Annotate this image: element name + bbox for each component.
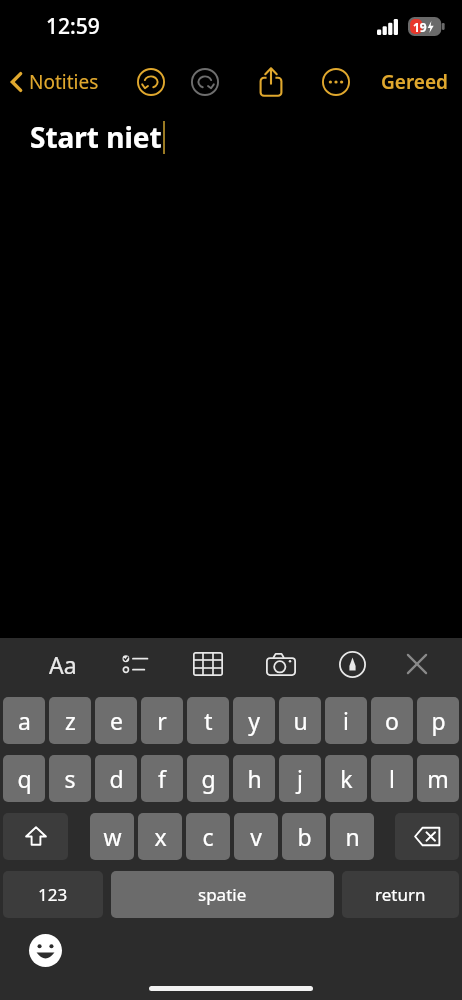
staticText: Aa <box>49 649 77 680</box>
staticText: return <box>375 883 426 906</box>
button[interactable]: Aa <box>40 641 86 687</box>
staticText: spatie <box>198 883 247 906</box>
button[interactable]: t <box>187 697 229 744</box>
button[interactable]: w <box>90 813 134 860</box>
button[interactable]: e <box>95 697 137 744</box>
staticText: c <box>202 821 214 852</box>
button[interactable]: o <box>371 697 413 744</box>
staticText: o <box>385 705 399 736</box>
staticText: d <box>109 763 124 794</box>
button[interactable]: b <box>282 813 326 860</box>
staticText: a <box>18 705 31 736</box>
staticText: h <box>247 763 262 794</box>
staticText: z <box>65 705 76 736</box>
staticText: Notities <box>29 69 99 95</box>
staticText: l <box>389 763 395 794</box>
staticText: Gereed <box>381 69 448 95</box>
button[interactable]: p <box>417 697 459 744</box>
staticText: p <box>431 705 446 736</box>
button[interactable]: return <box>342 871 459 918</box>
staticText: t <box>204 705 213 736</box>
button[interactable]: m <box>417 755 459 802</box>
button[interactable]: Start niet <box>0 108 462 600</box>
button[interactable]: c <box>186 813 230 860</box>
button[interactable]: Emoji <box>22 927 68 973</box>
button[interactable]: Backspace <box>395 813 459 860</box>
button[interactable]: Share <box>249 60 293 104</box>
button[interactable]: r <box>141 697 183 744</box>
button[interactable]: s <box>49 755 91 802</box>
staticText: g <box>201 763 216 794</box>
button[interactable]: More options <box>314 60 358 104</box>
button[interactable]: z <box>49 697 91 744</box>
button[interactable]: j <box>279 755 321 802</box>
button[interactable]: f <box>141 755 183 802</box>
button[interactable]: Redo <box>183 60 227 104</box>
button[interactable]: h <box>233 755 275 802</box>
staticText: u <box>293 705 308 736</box>
staticText: 123 <box>38 883 68 906</box>
button[interactable]: v <box>234 813 278 860</box>
staticText: w <box>103 821 122 852</box>
button[interactable]: g <box>187 755 229 802</box>
button[interactable]: l <box>371 755 413 802</box>
button[interactable]: 123 <box>3 871 103 918</box>
staticText: n <box>345 821 360 852</box>
staticText: i <box>343 705 349 736</box>
button[interactable]: Markup <box>329 641 375 687</box>
button[interactable]: i <box>325 697 367 744</box>
staticText: k <box>340 763 353 794</box>
button[interactable]: Notities <box>0 63 107 101</box>
button[interactable]: u <box>279 697 321 744</box>
button[interactable]: Table <box>185 641 231 687</box>
button[interactable]: y <box>233 697 275 744</box>
button[interactable]: Shift <box>3 813 68 860</box>
button[interactable]: x <box>138 813 182 860</box>
button[interactable]: Undo <box>129 60 173 104</box>
staticText: f <box>158 763 166 794</box>
staticText: b <box>297 821 312 852</box>
button[interactable]: Gereed <box>367 63 462 101</box>
staticText: q <box>17 763 32 794</box>
staticText: r <box>157 705 167 736</box>
button[interactable]: n <box>330 813 374 860</box>
button[interactable]: q <box>3 755 45 802</box>
button[interactable]: a <box>3 697 45 744</box>
button[interactable]: k <box>325 755 367 802</box>
button[interactable]: Checklist <box>112 641 158 687</box>
staticText: 19 <box>413 19 427 35</box>
staticText: e <box>110 705 123 736</box>
staticText: s <box>64 763 76 794</box>
staticText: v <box>250 821 262 852</box>
staticText: y <box>248 705 260 736</box>
button[interactable]: Camera <box>258 641 304 687</box>
staticText: 12:59 <box>46 12 100 41</box>
button[interactable]: Hide keyboard <box>394 641 440 687</box>
button[interactable]: d <box>95 755 137 802</box>
staticText: Start niet <box>30 118 162 156</box>
staticText: j <box>297 763 303 794</box>
staticText: x <box>154 821 167 852</box>
button[interactable]: spatie <box>111 871 334 918</box>
staticText: m <box>427 763 449 794</box>
